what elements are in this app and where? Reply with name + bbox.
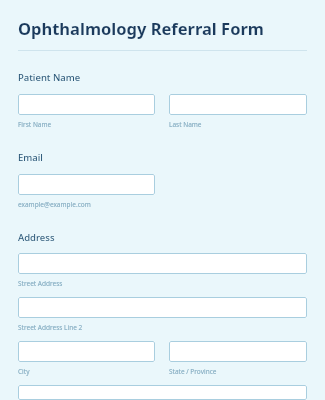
- staticText: example@example.com: [18, 200, 91, 209]
- staticText: City: [18, 367, 30, 376]
- button[interactable]: [18, 297, 307, 318]
- staticText: Street Address: [18, 279, 63, 288]
- staticText: Street Address Line 2: [18, 323, 83, 332]
- button[interactable]: [169, 94, 307, 115]
- staticText: Email: [18, 151, 43, 164]
- button[interactable]: [18, 253, 307, 274]
- button[interactable]: [18, 385, 307, 400]
- button[interactable]: [18, 174, 155, 195]
- button[interactable]: [18, 94, 155, 115]
- staticText: Last Name: [169, 120, 202, 129]
- staticText: Ophthalmology Referral Form: [18, 17, 264, 39]
- staticText: First Name: [18, 120, 52, 129]
- staticText: Patient Name: [18, 71, 81, 84]
- staticText: State / Province: [169, 367, 217, 376]
- button[interactable]: [18, 341, 155, 362]
- button[interactable]: [169, 341, 307, 362]
- staticText: Address: [18, 231, 55, 244]
